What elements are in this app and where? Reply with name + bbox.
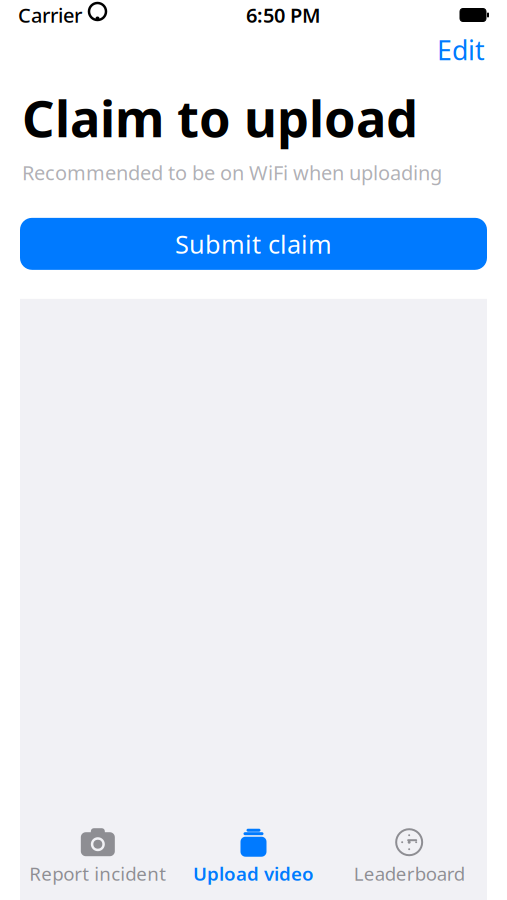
staticText: Recommended to be on WiFi when uploading — [22, 159, 442, 186]
staticText: Claim to upload — [22, 84, 418, 151]
button[interactable]: Leaderboard — [331, 821, 487, 892]
staticText: 6:50 PM — [246, 2, 321, 28]
staticText: Report incident — [29, 861, 166, 886]
staticText: Carrier — [18, 2, 82, 28]
staticText: Leaderboard — [354, 861, 465, 886]
staticText: Submit claim — [175, 227, 332, 261]
staticText: Upload video — [193, 861, 314, 886]
button[interactable]: Submit claim — [20, 218, 487, 270]
button[interactable]: Report incident — [20, 821, 176, 892]
button[interactable]: Upload video — [176, 821, 331, 892]
button[interactable]: Edit — [431, 26, 491, 74]
staticText: Edit — [437, 32, 485, 68]
